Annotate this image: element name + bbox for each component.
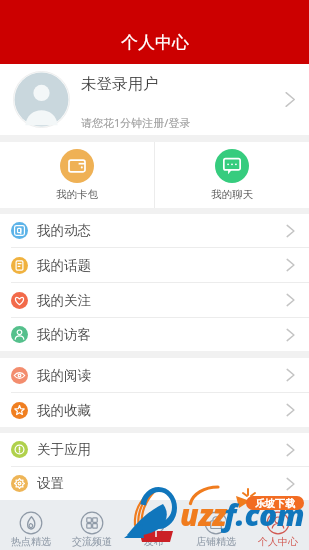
- button[interactable]: 设置: [0, 467, 309, 500]
- staticText: 热点精选: [11, 535, 51, 548]
- button[interactable]: 我的收藏: [0, 393, 309, 427]
- staticText: f.com: [224, 494, 305, 535]
- button[interactable]: 我的卡包: [0, 142, 154, 194]
- staticText: 请您花1分钟注册/登录: [81, 115, 191, 130]
- button[interactable]: 我的动态: [0, 214, 309, 247]
- staticText: 发布: [144, 535, 164, 548]
- staticText: 交流频道: [72, 535, 112, 548]
- button[interactable]: 我的访客: [0, 318, 309, 351]
- button[interactable]: 我的阅读: [0, 358, 309, 392]
- staticText: uzz: [180, 494, 227, 535]
- staticText: 设置: [37, 475, 64, 492]
- staticText: 个人中心: [258, 535, 298, 548]
- button[interactable]: 店铺精选: [185, 500, 247, 550]
- button[interactable]: 我的聊天: [155, 142, 309, 194]
- staticText: 我的收藏: [37, 402, 91, 419]
- staticText: 个人中心: [121, 32, 189, 53]
- button[interactable]: 未登录用户: [0, 64, 309, 135]
- staticText: 我的话题: [37, 257, 91, 274]
- staticText: 未登录用户: [81, 74, 159, 94]
- button[interactable]: 个人中心: [247, 500, 309, 550]
- staticText: 我的访客: [37, 326, 91, 343]
- staticText: 我的卡包: [56, 188, 98, 201]
- staticText: 乐坡下载: [255, 497, 295, 510]
- staticText: 我的阅读: [37, 367, 91, 384]
- staticText: 我的聊天: [211, 188, 253, 201]
- button[interactable]: 我的关注: [0, 283, 309, 317]
- button[interactable]: 热点精选: [0, 500, 61, 550]
- staticText: 我的动态: [37, 222, 91, 239]
- button[interactable]: 交流频道: [61, 500, 123, 550]
- staticText: 我的关注: [37, 292, 91, 309]
- staticText: 店铺精选: [196, 535, 236, 548]
- button[interactable]: 我的话题: [0, 248, 309, 282]
- button[interactable]: 发布: [123, 500, 185, 550]
- button[interactable]: 关于应用: [0, 433, 309, 466]
- staticText: 关于应用: [37, 441, 91, 458]
